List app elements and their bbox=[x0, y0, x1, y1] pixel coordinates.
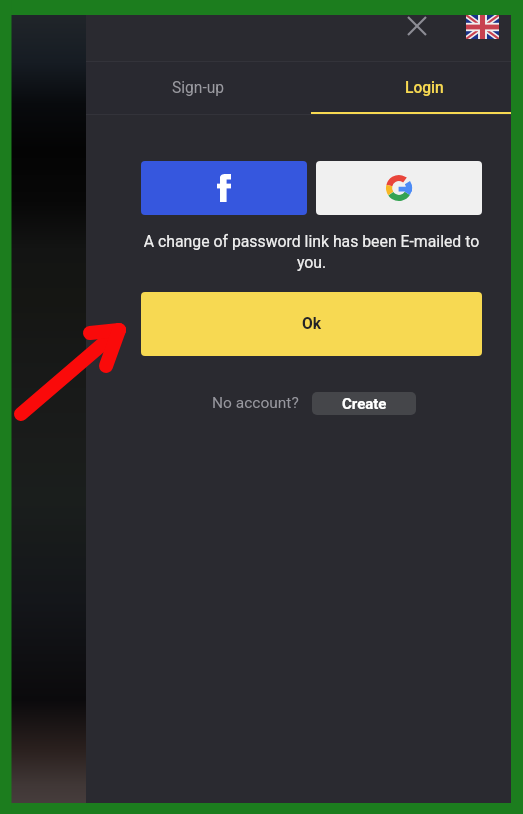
staticText: Create bbox=[342, 395, 387, 413]
button[interactable]: Ok bbox=[141, 292, 482, 356]
button[interactable]: Sign in with Facebook bbox=[141, 161, 307, 215]
staticText: Login bbox=[405, 79, 444, 97]
button[interactable]: Create bbox=[312, 392, 416, 415]
button[interactable]: Sign-up bbox=[86, 61, 311, 115]
button[interactable]: Language bbox=[466, 15, 499, 39]
staticText: A change of password link has been E-mai… bbox=[141, 232, 482, 272]
button[interactable]: Close bbox=[399, 8, 434, 43]
staticText: No account? bbox=[212, 394, 299, 412]
staticText: Sign-up bbox=[172, 79, 225, 97]
button[interactable]: Sign in with Google bbox=[316, 161, 482, 215]
button[interactable]: Login bbox=[311, 61, 523, 115]
staticText: Ok bbox=[302, 315, 322, 333]
